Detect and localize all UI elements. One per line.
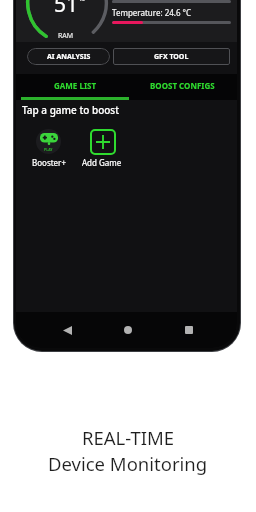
staticText: Temperature: 24.6 °C — [112, 7, 192, 18]
staticText: REAL-TIME — [82, 425, 175, 450]
staticText: GAME LIST — [54, 80, 97, 91]
staticText: Device Monitoring — [48, 451, 208, 476]
button[interactable]: GFX TOOL — [113, 48, 230, 65]
staticText: RAM — [58, 31, 74, 41]
staticText: % — [79, 0, 85, 4]
staticText: GFX TOOL — [154, 52, 189, 62]
button[interactable]: Back — [50, 313, 84, 347]
staticText: PLAY — [44, 147, 53, 152]
staticText: Tap a game to boost — [22, 103, 120, 117]
staticText: BOOST CONFIGS — [150, 80, 215, 91]
staticText: AI ANALYSIS — [47, 52, 91, 62]
button[interactable]: Booster+ — [36, 129, 61, 154]
button[interactable]: Home — [111, 313, 145, 347]
staticText: Booster+ — [32, 157, 66, 168]
staticText: 51 — [54, 0, 79, 19]
button[interactable]: GAME LIST — [21, 74, 129, 97]
button[interactable]: AI ANALYSIS — [27, 48, 110, 65]
button[interactable]: Add Game — [90, 129, 116, 155]
button[interactable]: Recent apps — [172, 313, 206, 347]
staticText: Add Game — [82, 157, 122, 168]
button[interactable]: BOOST CONFIGS — [129, 74, 235, 97]
